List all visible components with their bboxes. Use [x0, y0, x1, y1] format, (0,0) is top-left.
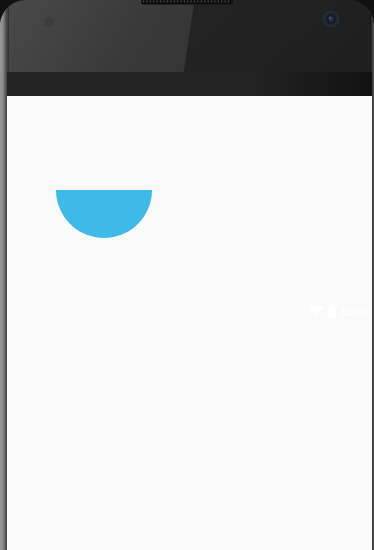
button[interactable]: Half circle graphic — [56, 190, 152, 238]
